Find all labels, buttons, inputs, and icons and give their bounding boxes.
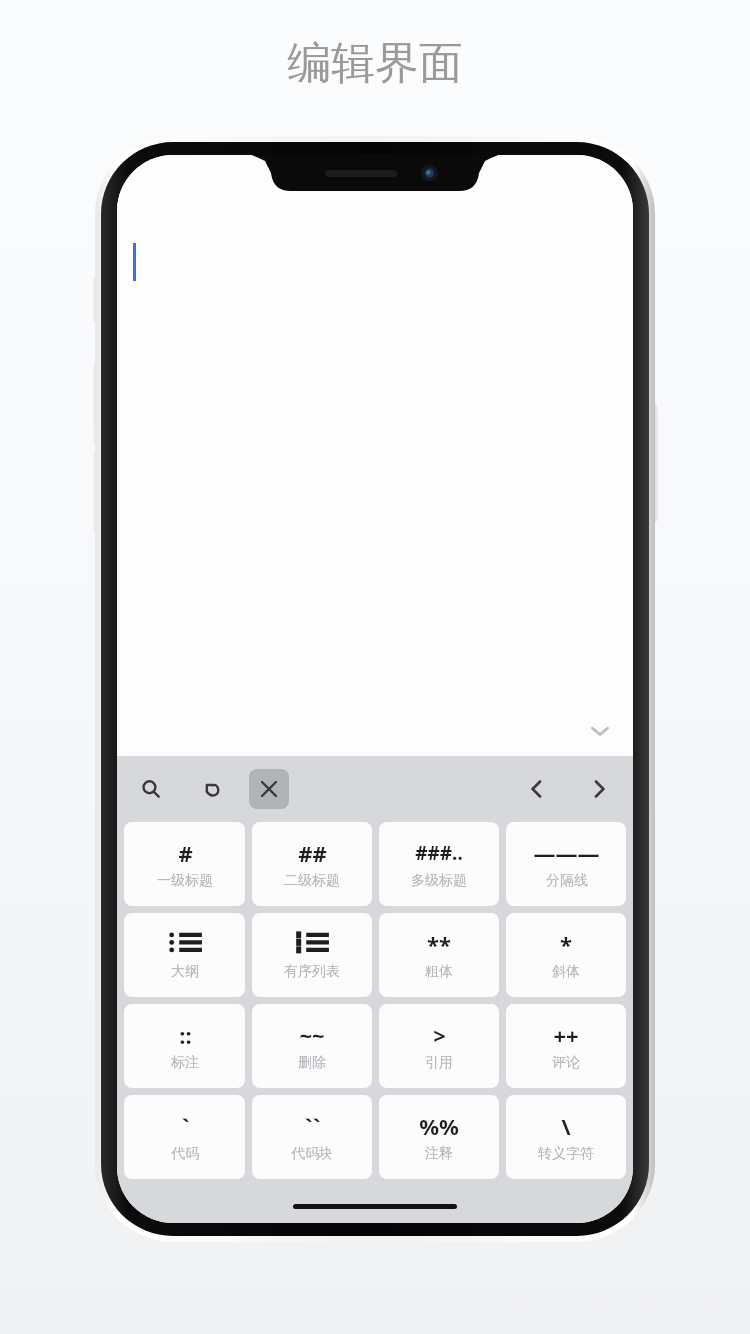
button[interactable]: * bbox=[506, 913, 626, 997]
staticText: 多级标题 bbox=[411, 872, 467, 890]
staticText: ++ bbox=[553, 1020, 579, 1050]
staticText: %% bbox=[419, 1111, 459, 1141]
staticText: 删除 bbox=[298, 1054, 326, 1072]
button[interactable]: 收起 bbox=[583, 714, 617, 748]
button[interactable]: ——— bbox=[506, 822, 626, 906]
button[interactable]: ~~ bbox=[252, 1004, 372, 1088]
staticText: 粗体 bbox=[425, 963, 453, 981]
staticText: 评论 bbox=[552, 1054, 580, 1072]
staticText: ~~ bbox=[299, 1020, 325, 1050]
staticText: ` bbox=[181, 1111, 190, 1141]
staticText: 注释 bbox=[425, 1145, 453, 1163]
staticText: ###.. bbox=[415, 840, 463, 866]
button[interactable]: 大纲 bbox=[124, 913, 245, 997]
button[interactable]: :: bbox=[124, 1004, 245, 1088]
staticText: # bbox=[178, 838, 193, 868]
button[interactable]: # bbox=[124, 822, 245, 906]
button[interactable]: ++ bbox=[506, 1004, 626, 1088]
staticText: 大纲 bbox=[171, 963, 199, 981]
staticText: > bbox=[433, 1020, 446, 1050]
staticText: ——— bbox=[533, 838, 600, 868]
button[interactable]: 搜索 bbox=[131, 769, 171, 809]
button[interactable]: `` bbox=[252, 1095, 372, 1179]
staticText: \ bbox=[561, 1111, 571, 1141]
staticText: 编辑界面 bbox=[287, 36, 463, 91]
staticText: ## bbox=[298, 838, 327, 868]
button[interactable]: 上一个 bbox=[517, 769, 557, 809]
button[interactable]: \ bbox=[506, 1095, 626, 1179]
staticText: * bbox=[560, 929, 572, 959]
button[interactable]: ###.. bbox=[379, 822, 499, 906]
staticText: :: bbox=[179, 1020, 192, 1050]
staticText: 代码块 bbox=[291, 1145, 333, 1163]
staticText: 标注 bbox=[171, 1054, 199, 1072]
staticText: ** bbox=[427, 929, 451, 959]
staticText: 分隔线 bbox=[546, 872, 588, 890]
staticText: 斜体 bbox=[552, 963, 580, 981]
button[interactable]: ## bbox=[252, 822, 372, 906]
button[interactable]: 下一个 bbox=[579, 769, 619, 809]
button[interactable]: ` bbox=[124, 1095, 245, 1179]
button[interactable]: 撤销 bbox=[193, 769, 233, 809]
button[interactable]: ** bbox=[379, 913, 499, 997]
staticText: 一级标题 bbox=[157, 872, 213, 890]
button[interactable]: 有序列表 bbox=[252, 913, 372, 997]
staticText: 引用 bbox=[425, 1054, 453, 1072]
button[interactable]: > bbox=[379, 1004, 499, 1088]
staticText: 代码 bbox=[171, 1145, 199, 1163]
button[interactable]: %% bbox=[379, 1095, 499, 1179]
button[interactable]: 关闭 bbox=[249, 769, 289, 809]
staticText: 二级标题 bbox=[284, 872, 340, 890]
staticText: 有序列表 bbox=[284, 963, 340, 981]
staticText: 转义字符 bbox=[538, 1145, 594, 1163]
staticText: `` bbox=[304, 1111, 321, 1141]
